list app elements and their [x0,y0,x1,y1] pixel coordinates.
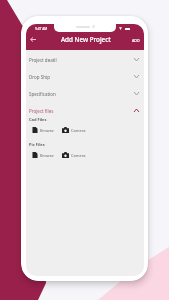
staticText: Browse [40,128,54,133]
button[interactable]: ADD [132,32,140,49]
staticText: Cad Files [29,117,47,122]
button[interactable]: Drop Ship [26,68,144,85]
staticText: Drop Ship [29,74,50,80]
button[interactable]: Camera [62,127,86,133]
staticText: 9:47 AM [35,27,48,31]
staticText: Specification [29,91,56,97]
staticText: Project files [29,108,54,114]
button[interactable]: Browse [32,127,54,133]
button[interactable]: Camera [62,152,86,158]
staticText: Camera [71,153,86,158]
staticText: Add New Project [61,35,111,44]
staticText: Pic Files [29,142,45,147]
button[interactable]: Project files [26,102,144,119]
button[interactable]: Browse [32,152,54,158]
staticText: ADD [132,38,140,43]
staticText: Browse [40,153,54,158]
button[interactable]: Project deatil [26,51,144,68]
staticText: Project deatil [29,57,57,63]
button[interactable]: Back [26,31,39,48]
button[interactable]: Specification [26,85,144,102]
staticText: Camera [71,128,86,133]
